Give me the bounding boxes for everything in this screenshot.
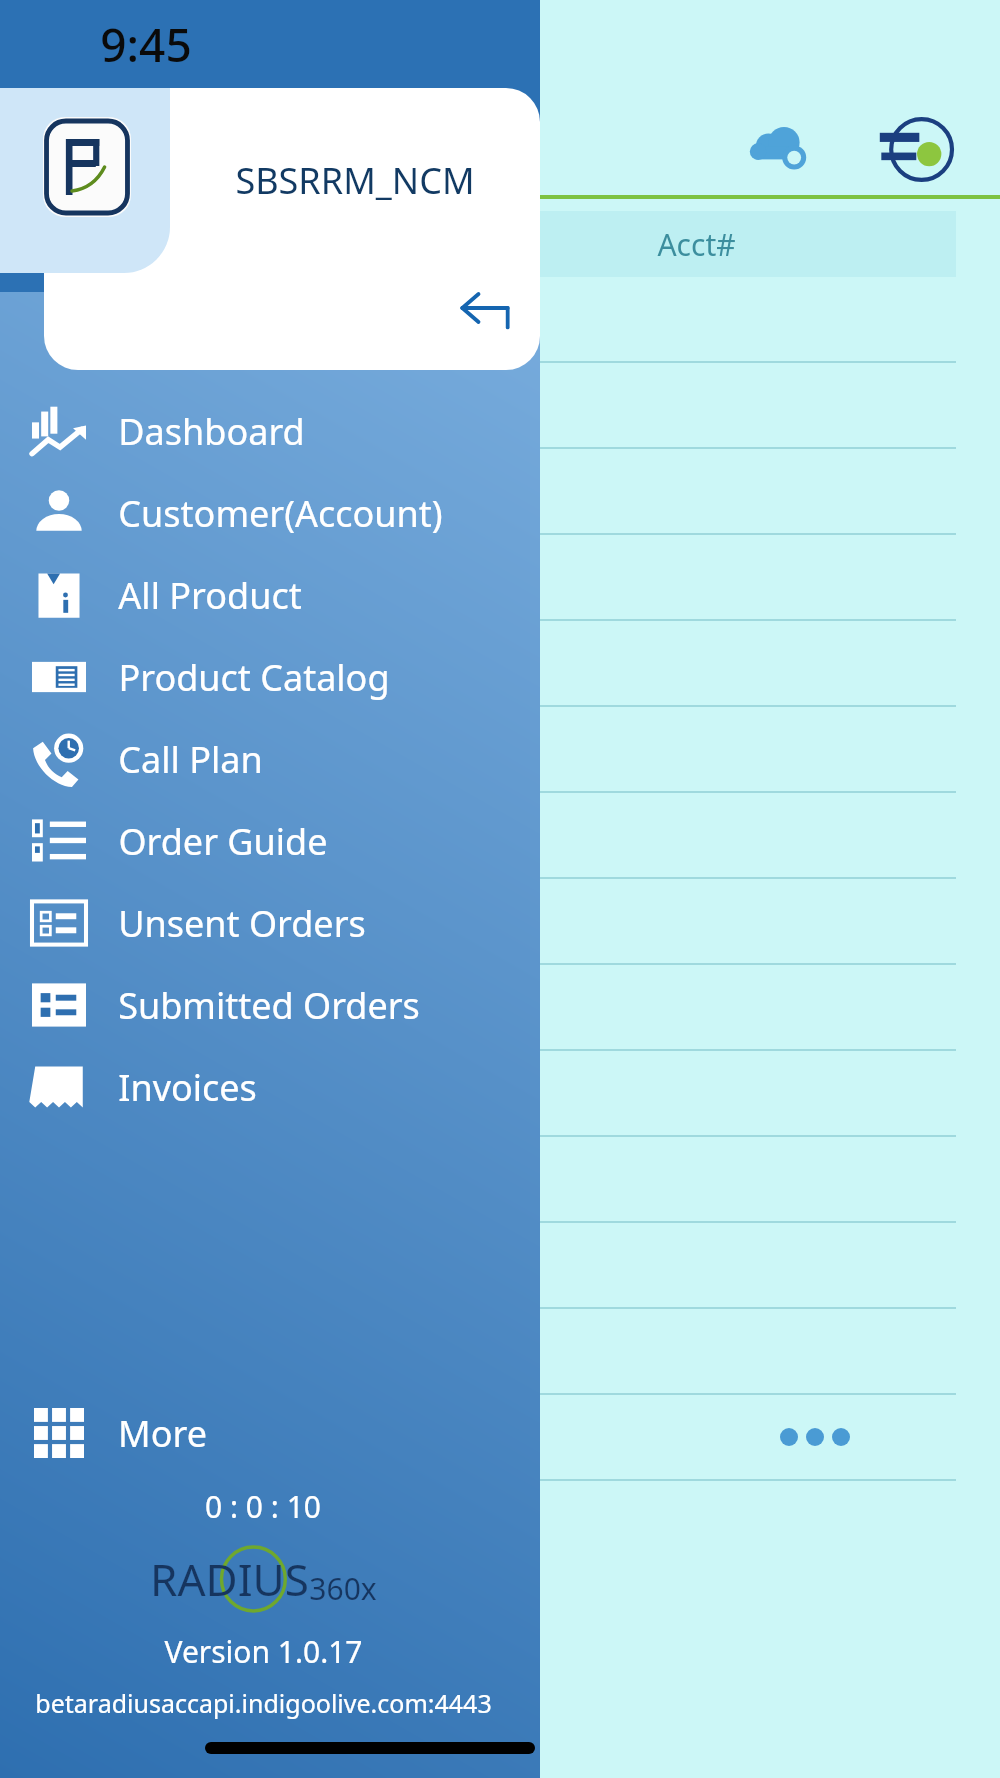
button[interactable]: All Product [0,554,540,636]
button[interactable]: y [0,879,1000,963]
button[interactable]: d [0,965,1000,1049]
button[interactable]: ersity [0,449,1000,533]
button[interactable]: Cloud sync [742,112,814,184]
button[interactable] [0,1395,1000,1479]
button[interactable] [0,1137,1000,1221]
button[interactable]: Indigo Olive [872,106,956,190]
staticText: 9:45 [100,13,192,76]
staticText: Unsent Orders [118,899,366,948]
staticText: Customer(Account) [118,489,443,538]
staticText: More [118,1409,207,1458]
button[interactable] [0,363,1000,447]
button[interactable]: Call Plan [0,718,540,800]
button[interactable] [0,1309,1000,1393]
button[interactable]: Dashboard [0,390,540,472]
staticText: SBSRRM_NCM [235,156,475,205]
button[interactable] [0,793,1000,877]
button[interactable] [0,277,1000,361]
button[interactable] [0,707,1000,791]
button[interactable]: Product Catalog [0,636,540,718]
staticText: betaradiusaccapi.indigoolive.com:4443 [35,1686,492,1720]
button[interactable]: More [0,1392,540,1474]
button[interactable]: Acct# [436,211,956,277]
button[interactable] [0,1223,1000,1307]
button[interactable]: Unsent Orders [0,882,540,964]
staticText: ersity [4,471,82,512]
button[interactable]: Back [450,273,520,343]
button[interactable]: Order Guide [0,800,540,882]
staticText: Invoices [118,1063,257,1112]
button[interactable]: Submitted Orders [0,964,540,1046]
staticText: rsville [4,1073,87,1114]
staticText: Product Catalog [118,653,390,702]
staticText: Acct# [657,224,736,265]
staticText: Submitted Orders [118,981,420,1030]
staticText: 360x [309,1568,377,1609]
button[interactable]: Invoices [0,1046,540,1128]
button[interactable]: Customer(Account) [0,472,540,554]
staticText: All Product [118,571,302,620]
staticText: RADIUS [150,1549,309,1609]
button[interactable]: rsville [0,1051,1000,1135]
button[interactable] [10,211,434,277]
staticText: Version 1.0.17 [164,1631,363,1672]
staticText: 0 : 0 : 10 [205,1486,321,1527]
staticText: Dashboard [118,407,305,456]
button[interactable] [0,535,1000,619]
staticText: Order Guide [118,817,328,866]
button[interactable] [0,621,1000,705]
staticText: Call Plan [118,735,263,784]
